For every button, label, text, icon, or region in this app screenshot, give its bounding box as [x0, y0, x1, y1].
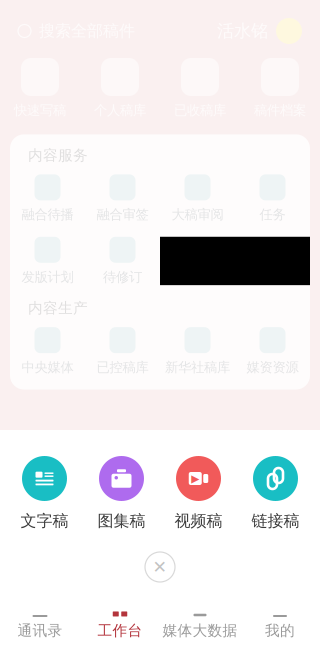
- staticText: 搜索全部稿件: [39, 21, 135, 41]
- button[interactable]: 关闭: [138, 545, 182, 589]
- staticText: 已收稿库: [174, 102, 226, 118]
- staticText: 发版计划: [21, 269, 73, 285]
- staticText: 稿件档案: [254, 102, 306, 118]
- staticText: 链接稿: [251, 511, 299, 531]
- staticText: ▶: [191, 472, 199, 484]
- staticText: 融合审签: [96, 206, 148, 223]
- staticText: ✕: [152, 557, 167, 577]
- staticText: 新华社稿库: [165, 359, 230, 376]
- button[interactable]: 图集稿: [83, 456, 160, 531]
- button[interactable]: ▶: [160, 456, 237, 531]
- staticText: 工作台: [97, 621, 142, 639]
- staticText: 中央媒体: [21, 359, 73, 376]
- button[interactable]: 媒体大数据: [160, 599, 240, 645]
- button[interactable]: 通讯录: [0, 599, 80, 645]
- staticText: 已控稿库: [96, 359, 148, 376]
- staticText: 媒资资源: [246, 359, 298, 376]
- staticText: 内容生产: [28, 299, 88, 317]
- staticText: 融合待播: [21, 206, 73, 223]
- staticText: 活水铭: [217, 20, 268, 42]
- button[interactable]: 链接稿: [237, 456, 314, 531]
- staticText: 待修订: [103, 269, 142, 285]
- button[interactable]: 我的: [240, 599, 320, 645]
- staticText: 我的: [265, 621, 295, 639]
- staticText: 文字稿: [20, 511, 68, 531]
- staticText: 媒体大数据: [162, 621, 237, 639]
- staticText: 内容服务: [28, 146, 88, 164]
- staticText: 快速写稿: [14, 102, 66, 118]
- staticText: 图集稿: [97, 511, 145, 531]
- staticText: 视频稿: [174, 511, 222, 531]
- staticText: 大稿审阅: [171, 206, 223, 223]
- staticText: 任务: [259, 206, 285, 223]
- button[interactable]: 文字稿: [6, 456, 83, 531]
- button[interactable]: 工作台: [80, 599, 160, 645]
- staticText: 通讯录: [17, 621, 62, 639]
